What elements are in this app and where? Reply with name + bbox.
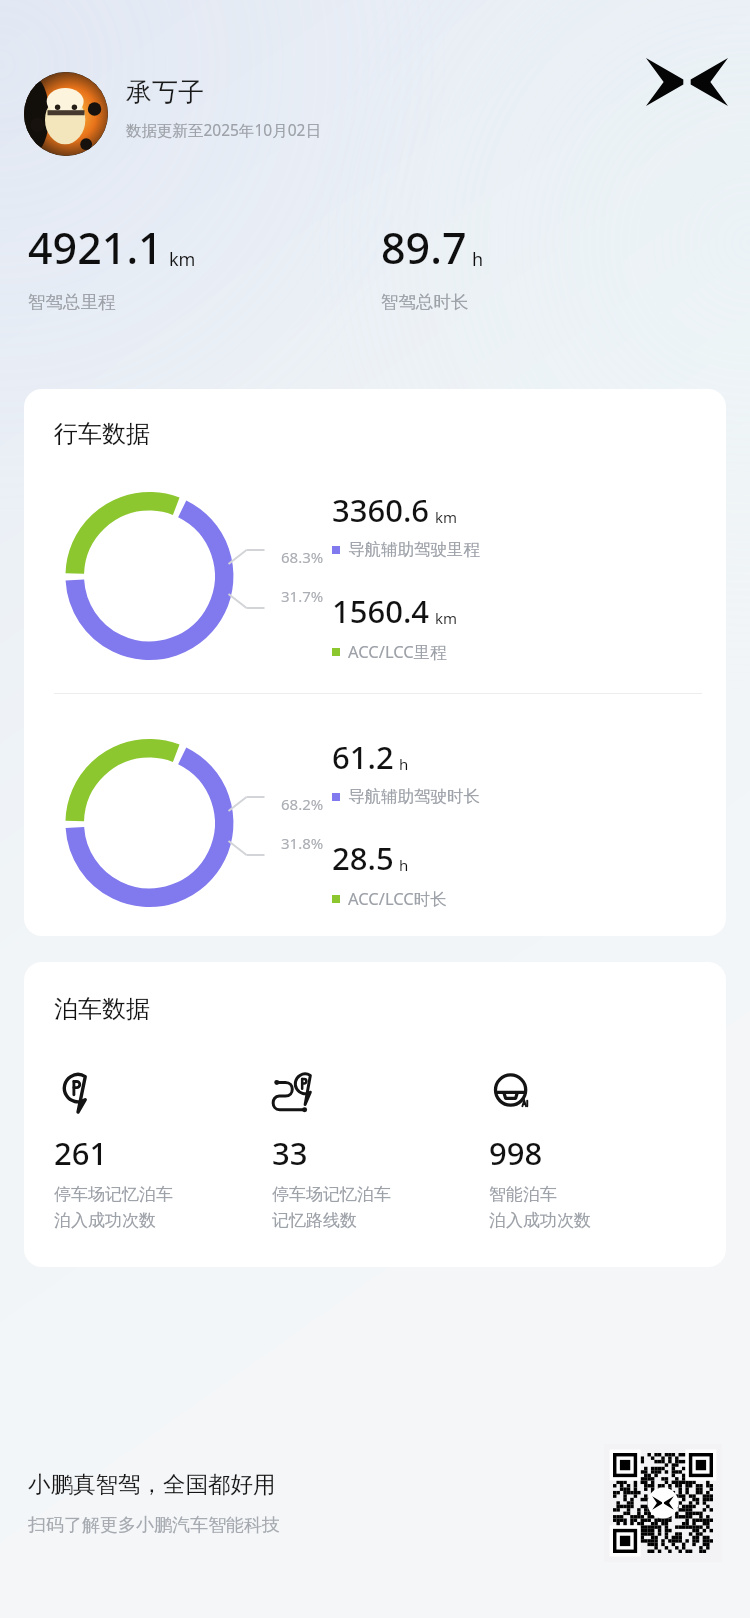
- staticText: 智驾总时长: [381, 291, 469, 313]
- staticText: 小鹏真智驾，全国都好用: [28, 1470, 276, 1498]
- staticText: 泊入成功次数: [489, 1210, 591, 1231]
- staticText: 数据更新至2025年10月02日: [126, 119, 321, 140]
- staticText: 61.2: [332, 736, 394, 778]
- staticText: 68.3%: [281, 547, 324, 567]
- button[interactable]: 二维码: [604, 1444, 722, 1562]
- staticText: 89.7: [381, 218, 467, 277]
- staticText: 智能泊车: [489, 1184, 557, 1205]
- staticText: h: [399, 855, 409, 875]
- staticText: 33: [272, 1132, 308, 1174]
- other: XPeng: [646, 58, 728, 106]
- staticText: 4921.1: [28, 218, 163, 277]
- staticText: 停车场记忆泊车: [54, 1184, 173, 1205]
- button[interactable]: 261: [54, 1068, 272, 1231]
- staticText: 停车场记忆泊车: [272, 1184, 391, 1205]
- button[interactable]: 泊车数据: [24, 962, 726, 1267]
- staticText: 3360.6: [332, 489, 430, 531]
- staticText: 1560.4: [332, 590, 430, 632]
- staticText: 扫码了解更多小鹏汽车智能科技: [28, 1514, 280, 1537]
- staticText: 261: [54, 1132, 108, 1174]
- button[interactable]: 行车数据: [24, 389, 726, 936]
- staticText: ACC/LCC里程: [348, 640, 447, 663]
- staticText: 泊入成功次数: [54, 1210, 156, 1231]
- staticText: 28.5: [332, 837, 394, 879]
- staticText: km: [435, 608, 458, 628]
- staticText: 68.2%: [281, 794, 324, 814]
- button[interactable]: 33: [272, 1068, 489, 1231]
- staticText: 31.7%: [281, 586, 324, 606]
- staticText: h: [399, 754, 409, 774]
- staticText: 31.8%: [281, 833, 324, 853]
- staticText: 行车数据: [54, 419, 150, 449]
- staticText: 记忆路线数: [272, 1210, 357, 1231]
- staticText: 泊车数据: [54, 994, 150, 1024]
- staticText: 998: [489, 1132, 543, 1174]
- staticText: h: [472, 247, 484, 272]
- staticText: 导航辅助驾驶里程: [348, 539, 480, 560]
- staticText: 承丂子: [126, 76, 204, 109]
- button[interactable]: 头像: [24, 72, 108, 156]
- staticText: 智驾总里程: [28, 291, 116, 313]
- staticText: km: [435, 507, 458, 527]
- staticText: 导航辅助驾驶时长: [348, 786, 480, 807]
- staticText: km: [169, 247, 196, 272]
- staticText: ACC/LCC时长: [348, 887, 447, 910]
- button[interactable]: 998: [489, 1068, 706, 1231]
